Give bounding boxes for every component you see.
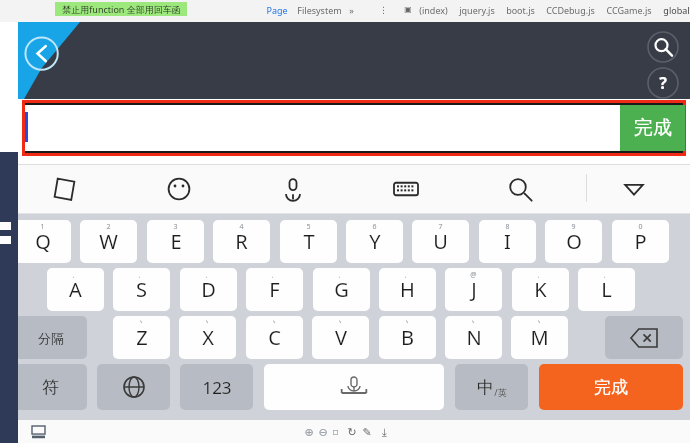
button[interactable]: Search: [646, 30, 680, 64]
staticText: O: [566, 228, 582, 255]
button[interactable]: Voice input: [269, 167, 317, 211]
button[interactable]: J: [445, 268, 502, 311]
staticText: E: [170, 228, 182, 255]
staticText: P: [634, 228, 647, 255]
button[interactable]: M: [511, 316, 568, 359]
button[interactable]: 分隔: [14, 316, 87, 359]
staticText: 9: [571, 222, 576, 232]
staticText: R: [235, 228, 248, 255]
staticText: 、: [338, 270, 345, 279]
staticText: Filesystem: [297, 4, 342, 16]
button[interactable]: X: [179, 316, 236, 359]
button[interactable]: 完成: [620, 105, 685, 151]
staticText: global.js: [663, 4, 690, 16]
staticText: 3: [173, 222, 178, 232]
button[interactable]: 符: [14, 364, 87, 410]
staticText: 、: [72, 270, 79, 279]
button[interactable]: Emoji: [155, 167, 203, 211]
button[interactable]: Hide keyboard: [610, 167, 658, 211]
button[interactable]: Search: [496, 167, 544, 211]
staticText: K: [534, 276, 547, 303]
button[interactable]: Z: [113, 316, 170, 359]
button[interactable]: V: [312, 316, 369, 359]
button[interactable]: Back: [0, 22, 80, 99]
staticText: 6: [372, 222, 377, 232]
button[interactable]: B: [379, 316, 436, 359]
button[interactable]: R: [213, 220, 270, 263]
staticText: T: [303, 228, 315, 255]
staticText: ✎: [362, 426, 372, 439]
staticText: Page: [266, 4, 288, 16]
staticText: W: [99, 228, 118, 255]
button[interactable]: Backspace: [605, 316, 683, 359]
staticText: 2: [106, 222, 111, 232]
staticText: M: [530, 324, 549, 351]
staticText: ▣: [404, 5, 412, 14]
staticText: F: [269, 276, 280, 303]
button[interactable]: E: [147, 220, 204, 263]
staticText: 123: [202, 376, 232, 399]
staticText: 完成: [594, 377, 628, 398]
button[interactable]: A: [47, 268, 104, 311]
staticText: 丶: [204, 318, 211, 327]
button[interactable]: 完成: [539, 364, 683, 410]
button[interactable]: Space: [264, 364, 444, 410]
button[interactable]: Language: [97, 364, 170, 410]
staticText: 、: [404, 270, 411, 279]
staticText: boot.js: [506, 4, 535, 16]
button[interactable]: S: [113, 268, 170, 311]
staticText: 丶: [271, 318, 278, 327]
staticText: 4: [239, 222, 244, 232]
staticText: Y: [369, 228, 381, 255]
button[interactable]: U: [412, 220, 469, 263]
button[interactable]: I: [479, 220, 536, 263]
button[interactable]: Y: [346, 220, 403, 263]
button[interactable]: T: [280, 220, 337, 263]
staticText: 、: [138, 270, 145, 279]
button[interactable]: H: [379, 268, 436, 311]
button[interactable]: O: [545, 220, 602, 263]
staticText: N: [466, 324, 482, 351]
staticText: /英: [494, 386, 507, 398]
button[interactable]: N: [445, 316, 502, 359]
staticText: A: [69, 276, 82, 303]
staticText: Z: [136, 324, 148, 351]
button[interactable]: 中: [455, 364, 528, 410]
staticText: V: [335, 324, 347, 351]
staticText: 7: [438, 222, 443, 232]
staticText: »: [349, 4, 354, 16]
staticText: 1: [40, 222, 45, 232]
staticText: 8: [505, 222, 510, 232]
staticText: L: [601, 276, 612, 303]
staticText: S: [136, 276, 147, 303]
staticText: 丶: [470, 318, 477, 327]
staticText: (index): [419, 4, 448, 16]
button[interactable]: Sogou: [41, 167, 89, 211]
button[interactable]: C: [246, 316, 303, 359]
button[interactable]: W: [80, 220, 137, 263]
staticText: 、: [603, 270, 610, 279]
button[interactable]: D: [180, 268, 237, 311]
button[interactable]: K: [512, 268, 569, 311]
button[interactable]: P: [612, 220, 669, 263]
button[interactable]: Help: [646, 66, 680, 100]
button[interactable]: G: [313, 268, 370, 311]
staticText: @: [470, 270, 477, 280]
staticText: 丶: [536, 318, 543, 327]
staticText: 符: [42, 377, 59, 398]
staticText: ⤓: [382, 427, 387, 438]
staticText: CCDebug.js: [546, 4, 595, 16]
button[interactable]: L: [578, 268, 635, 311]
staticText: X: [202, 324, 214, 351]
staticText: G: [334, 276, 349, 303]
button[interactable]: Q: [14, 220, 71, 263]
staticText: ?: [659, 72, 667, 94]
staticText: J: [471, 276, 477, 303]
button[interactable]: 123: [180, 364, 253, 410]
staticText: 丶: [337, 318, 344, 327]
staticText: jquery.js: [459, 4, 495, 16]
staticText: Q: [35, 228, 51, 255]
button[interactable]: Keyboard: [382, 167, 430, 211]
button[interactable]: F: [246, 268, 303, 311]
